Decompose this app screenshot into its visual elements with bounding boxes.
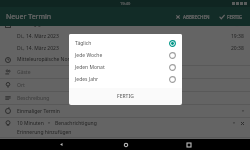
staticText: Einmaliger Termin <box>17 108 241 115</box>
staticText: Ganztägig <box>17 21 235 28</box>
button[interactable]: Fertig <box>218 12 244 22</box>
button[interactable]: Gäste <box>0 66 250 78</box>
button[interactable]: Ganztägig <box>0 19 250 30</box>
button[interactable]: Startseite <box>124 143 128 147</box>
staticText: 10 Minuten <box>17 120 44 127</box>
staticText: Jede Woche <box>75 52 169 59</box>
staticText: Di., 14. März 2023 <box>17 33 231 40</box>
button[interactable]: FERTIG <box>69 88 182 105</box>
button[interactable]: Abbrechen <box>174 12 211 22</box>
button[interactable]: 10 Minuten <box>0 118 250 137</box>
staticText: Gäste <box>17 69 245 76</box>
button[interactable]: Beschreibung <box>0 92 250 104</box>
staticText: 20:38 <box>231 45 244 52</box>
staticText: 19:38 <box>231 33 244 40</box>
button[interactable]: Jeden Monat <box>69 61 182 73</box>
staticText: Beschäftigt <box>17 141 241 148</box>
button[interactable]: Übersicht <box>187 143 191 147</box>
staticText: FERTIG <box>117 93 134 100</box>
staticText: Jeden Monat <box>75 64 169 71</box>
staticText: Jedes Jahr <box>75 76 169 83</box>
button[interactable]: Ganztägig <box>235 22 245 27</box>
staticText: FERTIG <box>227 14 243 20</box>
staticText: Ort <box>17 82 245 89</box>
staticText: Di., 14. März 2023 <box>17 45 231 52</box>
other: Entfernen <box>240 121 245 126</box>
button[interactable]: Einmaliger Termin <box>0 105 250 117</box>
staticText: ABBRECHEN <box>183 14 210 20</box>
button[interactable]: Zurück <box>59 142 64 147</box>
staticText: Neuer Termin <box>6 12 174 22</box>
button[interactable]: Di., 14. März 2023 <box>0 42 250 54</box>
button[interactable]: Jede Woche <box>69 49 182 61</box>
staticText: Beschreibung <box>17 95 245 102</box>
staticText: Täglich <box>75 40 169 47</box>
staticText: Mitteleuropäische Normalzeit <box>17 56 87 63</box>
staticText: Benachrichtigung <box>55 120 97 127</box>
staticText: 19:40 <box>120 1 131 6</box>
button[interactable]: Täglich <box>69 37 182 49</box>
staticText: Erinnerung hinzufügen <box>17 129 72 136</box>
button[interactable]: Jedes Jahr <box>69 73 182 85</box>
button[interactable]: Ort <box>0 79 250 91</box>
button[interactable]: Di., 14. März 2023 <box>0 30 250 42</box>
button[interactable]: Mitteleuropäische Normalzeit <box>0 54 250 65</box>
button[interactable]: Beschäftigt <box>0 138 250 150</box>
